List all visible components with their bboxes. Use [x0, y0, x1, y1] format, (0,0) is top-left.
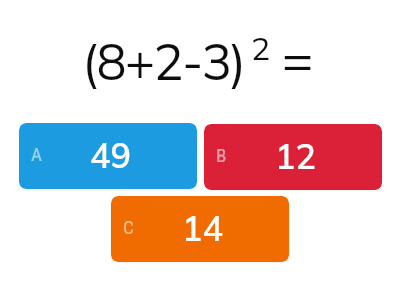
- staticText: C: [123, 216, 134, 238]
- button[interactable]: A: [19, 123, 197, 189]
- staticText: =: [282, 26, 314, 91]
- staticText: 49: [90, 134, 131, 177]
- staticText: 14: [182, 207, 223, 250]
- staticText: A: [31, 143, 42, 165]
- button[interactable]: B: [204, 124, 382, 190]
- staticText: B: [216, 144, 227, 166]
- staticText: 12: [275, 135, 316, 178]
- staticText: 2: [251, 28, 271, 68]
- staticText: (8+2-3): [82, 30, 245, 93]
- button[interactable]: C: [111, 196, 289, 262]
